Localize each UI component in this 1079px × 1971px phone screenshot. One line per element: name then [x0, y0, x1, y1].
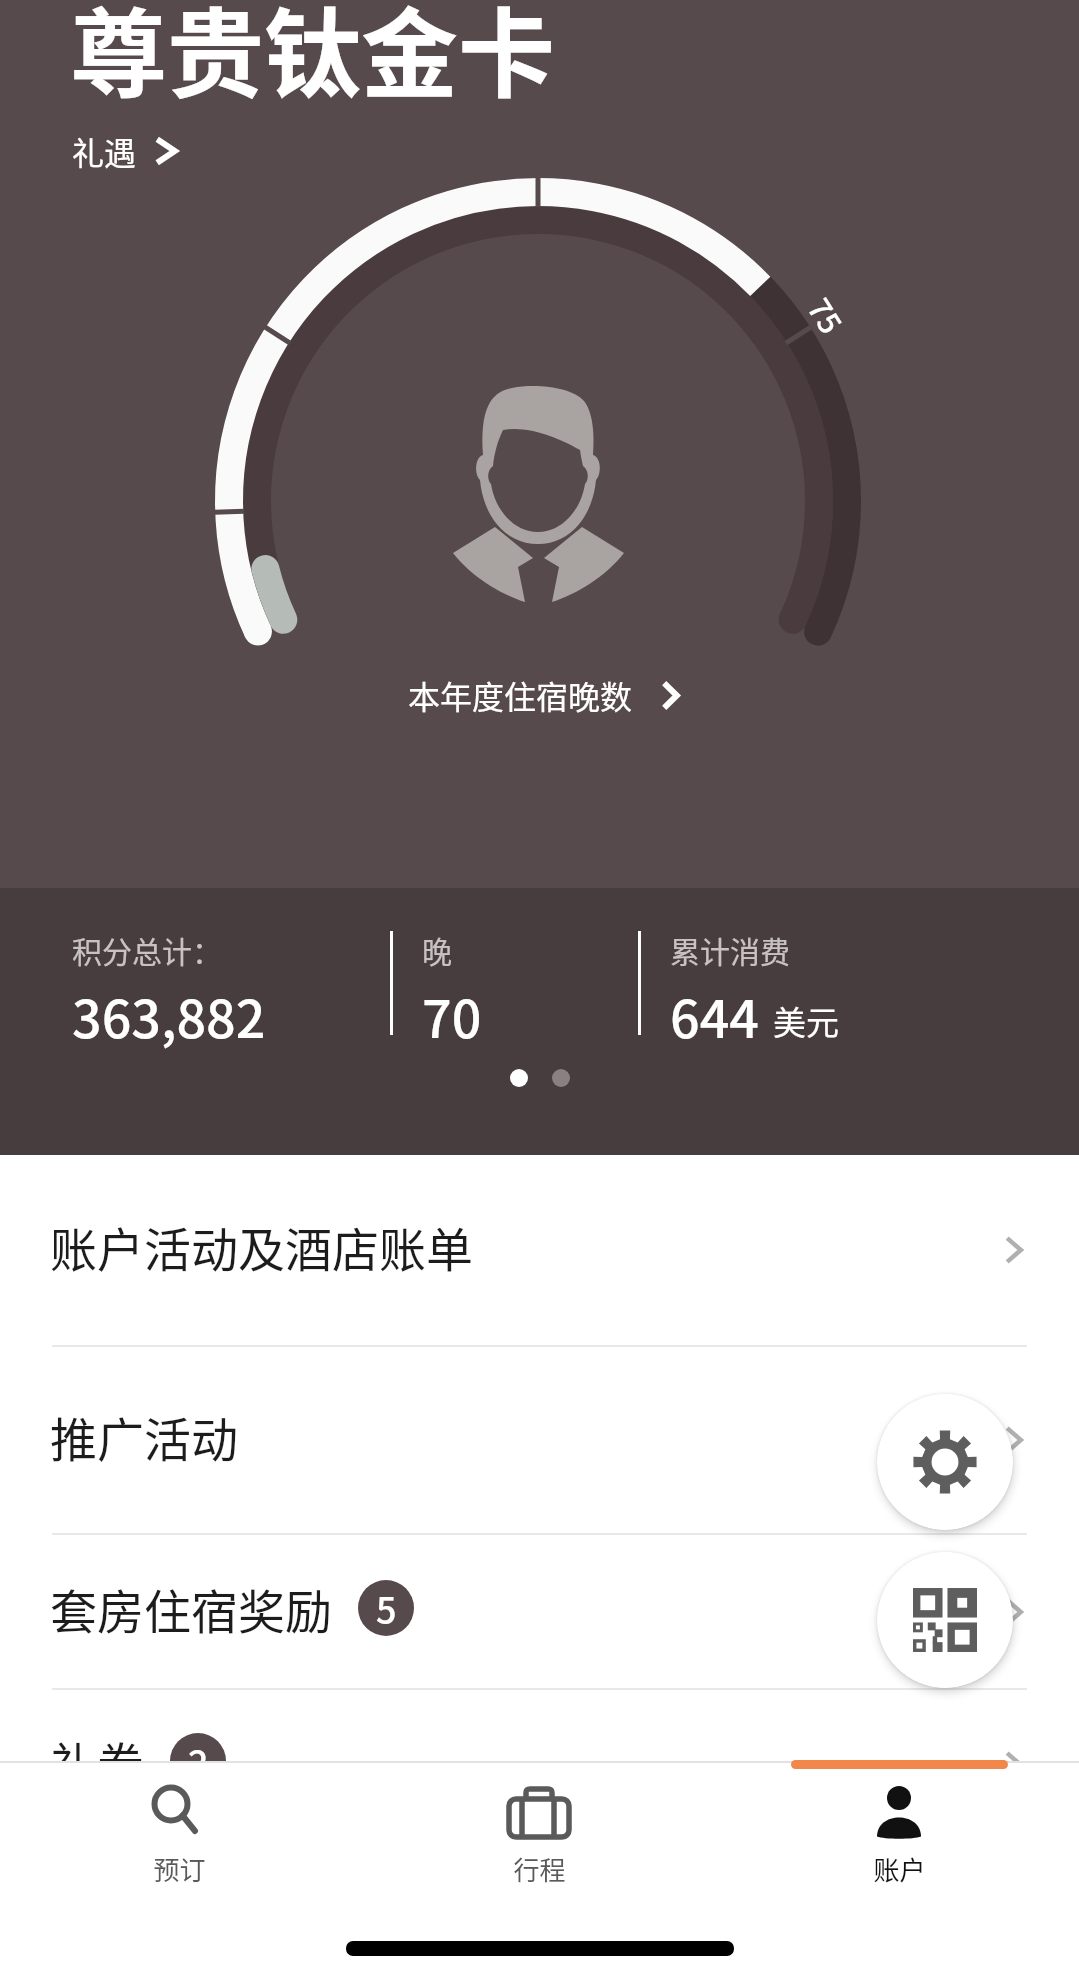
- staticText: 预订: [153, 1850, 206, 1888]
- button[interactable]: 账户活动及酒店账单: [0, 1155, 1079, 1345]
- staticText: 账户: [873, 1850, 926, 1888]
- staticText: 累计消费: [670, 928, 790, 971]
- button[interactable]: 预订: [0, 1761, 359, 1970]
- staticText: 晚: [422, 928, 452, 971]
- button[interactable]: 礼遇: [72, 128, 179, 174]
- staticText: 70: [422, 978, 482, 1053]
- button[interactable]: 本年度住宿晚数: [408, 672, 681, 718]
- staticText: 推广活动: [50, 1402, 238, 1470]
- button[interactable]: 推广活动: [0, 1347, 1079, 1533]
- button[interactable]: 礼券: [0, 1690, 1079, 1840]
- staticText: 积分总计：: [72, 928, 222, 971]
- button[interactable]: 设置: [877, 1394, 1013, 1530]
- staticText: 75: [802, 289, 854, 340]
- button[interactable]: 账户: [719, 1761, 1079, 1970]
- staticText: 行程: [513, 1850, 566, 1888]
- staticText: 5: [376, 1582, 397, 1634]
- staticText: 礼遇: [72, 128, 137, 174]
- staticText: 套房住宿奖励: [50, 1574, 332, 1642]
- staticText: 尊贵钛金卡: [70, 0, 555, 116]
- staticText: 美元: [773, 997, 839, 1045]
- staticText: 644: [670, 978, 759, 1053]
- staticText: 账户活动及酒店账单: [50, 1212, 473, 1280]
- button[interactable]: 二维码: [877, 1552, 1013, 1688]
- staticText: 礼券: [50, 1727, 144, 1795]
- button[interactable]: 行程: [359, 1761, 719, 1970]
- button[interactable]: 套房住宿奖励: [0, 1535, 1079, 1688]
- staticText: 2: [188, 1735, 209, 1787]
- staticText: 363,882: [72, 978, 266, 1053]
- staticText: 本年度住宿晚数: [408, 672, 633, 718]
